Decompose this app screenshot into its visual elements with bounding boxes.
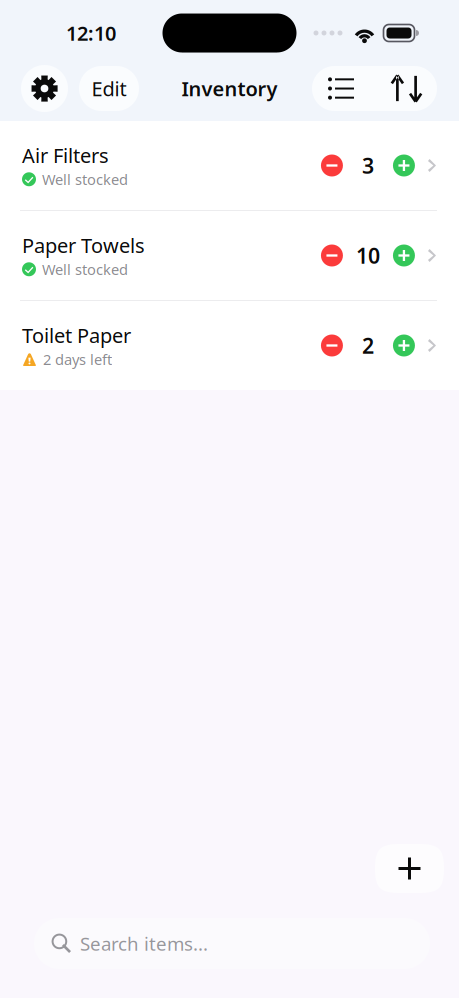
button[interactable]: Search items... — [34, 918, 430, 969]
staticText: 10 — [356, 241, 380, 270]
staticText: 3 — [362, 151, 374, 180]
button[interactable]: Sort — [370, 66, 437, 111]
button[interactable]: Increase Air Filters — [387, 147, 421, 183]
staticText: 12:10 — [66, 20, 116, 46]
button[interactable]: Paper Towels — [0, 211, 459, 300]
button[interactable]: Increase Toilet Paper — [387, 327, 421, 363]
staticText: Well stocked — [42, 169, 128, 189]
staticText: 2 — [362, 331, 374, 360]
button[interactable]: Toilet Paper — [0, 301, 459, 390]
button[interactable]: Air Filters — [0, 121, 459, 210]
staticText: Toilet Paper — [22, 322, 131, 349]
staticText: Edit — [91, 75, 126, 102]
button[interactable]: List view — [312, 66, 370, 111]
staticText: Inventory — [181, 75, 277, 102]
button[interactable]: Decrease Air Filters — [315, 147, 349, 183]
button[interactable]: Settings — [21, 65, 68, 112]
button[interactable]: Decrease Paper Towels — [315, 237, 349, 273]
staticText: Search items... — [80, 931, 208, 956]
button[interactable]: Increase Paper Towels — [387, 237, 421, 273]
button[interactable]: Add item — [375, 844, 444, 893]
button[interactable]: Decrease Toilet Paper — [315, 327, 349, 363]
staticText: Air Filters — [22, 142, 109, 169]
staticText: Paper Towels — [22, 232, 145, 259]
staticText: 2 days left — [43, 349, 112, 369]
staticText: Well stocked — [42, 259, 128, 279]
button[interactable]: Edit — [79, 66, 139, 111]
